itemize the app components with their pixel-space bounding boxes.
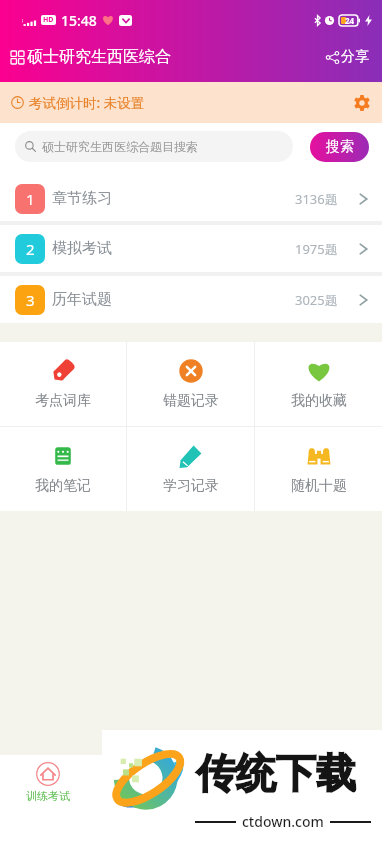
staticText: 章节练习 [52, 189, 112, 208]
staticText: 15:48 [61, 11, 97, 30]
staticText: 搜索 [326, 138, 354, 156]
button[interactable]: 1 [0, 176, 382, 221]
button[interactable]: 错题记录 [127, 342, 254, 426]
staticText: 3025题 [295, 291, 338, 309]
staticText: 分享 [341, 48, 369, 66]
staticText: ctdown.com [242, 812, 324, 831]
staticText: 硕士研究生西医综合题目搜索 [42, 139, 198, 154]
staticText: 考点词库 [35, 392, 91, 410]
staticText: 随机十题 [291, 477, 347, 495]
button[interactable]: 随机十题 [255, 427, 382, 511]
button[interactable]: 硕士研究生西医综合题目搜索 [15, 131, 293, 162]
staticText: 1 [26, 189, 35, 209]
button[interactable]: 我的笔记 [0, 427, 126, 511]
staticText: 传统下载 [196, 748, 356, 798]
button[interactable]: 考点词库 [0, 342, 126, 426]
staticText: 3136题 [295, 190, 338, 208]
button[interactable]: 搜索 [310, 132, 369, 162]
staticText: 硕士研究生西医综合 [27, 47, 171, 67]
staticText: 1975题 [295, 240, 338, 258]
staticText: HD [43, 15, 54, 25]
staticText: 错题记录 [163, 392, 219, 410]
staticText: 历年试题 [52, 290, 112, 309]
button[interactable]: Menu [174, 816, 208, 845]
staticText: 我的收藏 [291, 392, 347, 410]
button[interactable]: 设置 [346, 92, 370, 114]
staticText: 学习记录 [163, 477, 219, 495]
staticText: 模拟考试 [52, 239, 112, 258]
button[interactable]: 我的收藏 [255, 342, 382, 426]
staticText: 2 [26, 239, 35, 259]
staticText: 训练考试 [26, 789, 70, 803]
staticText: 考试倒计时: 未设置 [29, 94, 145, 112]
button[interactable]: 2 [0, 225, 382, 272]
staticText: 我的笔记 [35, 477, 91, 495]
button[interactable]: 学习记录 [127, 427, 254, 511]
button[interactable]: 分享 [326, 48, 369, 66]
button[interactable]: 训练考试 [0, 755, 95, 810]
staticText: 24 [345, 15, 355, 26]
staticText: 3 [26, 290, 35, 310]
button[interactable]: 3 [0, 276, 382, 323]
